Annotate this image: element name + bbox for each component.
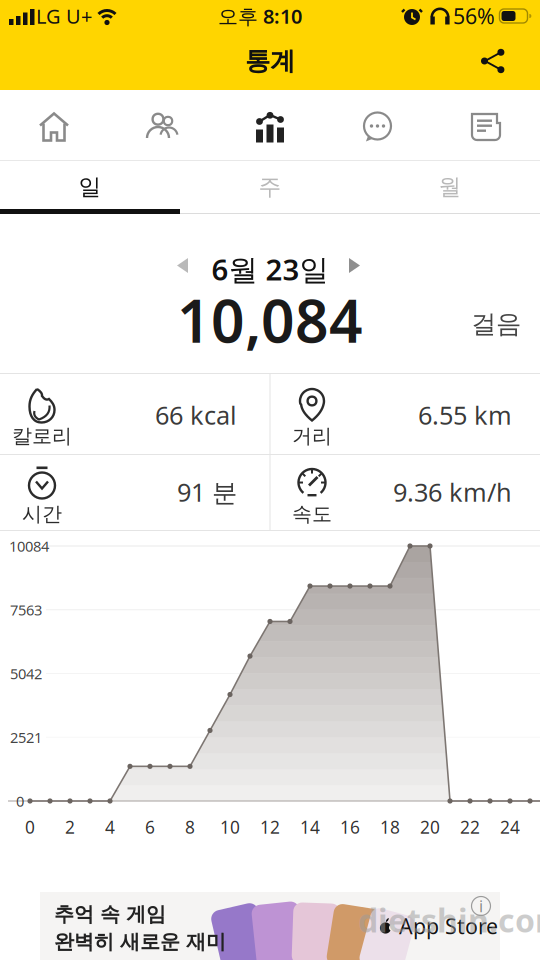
staticText: 월	[438, 173, 461, 201]
staticText: 14	[300, 815, 320, 838]
staticText: 0	[16, 791, 24, 811]
staticText: 5042	[10, 664, 42, 683]
button[interactable]: Home	[24, 101, 84, 153]
staticText: 6.55 km	[418, 398, 512, 432]
button[interactable]: 월	[360, 163, 540, 211]
staticText: 91 분	[177, 475, 237, 509]
staticText: 추억 속 게임	[54, 902, 166, 926]
staticText: 완벽히 새로운 재미	[54, 929, 226, 954]
button[interactable]: 일	[0, 163, 180, 211]
staticText: 6	[145, 815, 155, 838]
staticText: 10084	[9, 536, 49, 556]
staticText: 통계	[245, 45, 295, 76]
staticText: 일	[78, 173, 101, 201]
staticText: 24	[500, 815, 520, 838]
staticText: 0	[25, 815, 35, 838]
staticText: i	[479, 895, 483, 917]
button[interactable]: Next day	[349, 258, 373, 282]
staticText: 18	[380, 815, 400, 838]
staticText: 10	[220, 815, 240, 838]
staticText: 속도	[292, 502, 332, 526]
staticText: 6월 23일	[211, 249, 328, 288]
button[interactable]: Chat	[348, 101, 408, 153]
staticText: 66 kcal	[155, 398, 237, 432]
staticText: LG U+	[36, 3, 92, 29]
staticText: 2521	[10, 727, 42, 747]
staticText: 16	[340, 815, 360, 838]
staticText: 걸음	[471, 308, 521, 339]
staticText: 22	[460, 815, 480, 838]
button[interactable]: Friends	[132, 101, 192, 153]
staticText: 9.36 km/h	[393, 475, 512, 509]
staticText: 10,084	[177, 281, 363, 359]
staticText: 7563	[10, 600, 42, 619]
staticText: 12	[260, 815, 280, 838]
staticText: 거리	[292, 424, 332, 448]
staticText: 56%	[453, 2, 495, 30]
staticText: 20	[420, 815, 440, 838]
button[interactable]: News	[456, 101, 516, 153]
staticText: 오후 8:10	[218, 3, 302, 29]
staticText: 8	[185, 815, 195, 838]
button[interactable]: 추억 속 게임	[40, 892, 500, 960]
button[interactable]: Previous day	[177, 258, 201, 282]
button[interactable]: Statistics	[240, 101, 300, 153]
staticText: 시간	[22, 502, 62, 526]
button[interactable]: 주	[180, 163, 360, 211]
staticText: App Store	[399, 912, 498, 940]
staticText: 칼로리	[12, 424, 72, 448]
staticText: 주	[258, 173, 281, 201]
staticText: 4	[105, 815, 115, 838]
staticText: dietshin.com	[358, 899, 540, 941]
staticText: 2	[65, 815, 75, 838]
button[interactable]: Share	[476, 44, 510, 78]
button[interactable]: Ad info	[470, 895, 492, 917]
